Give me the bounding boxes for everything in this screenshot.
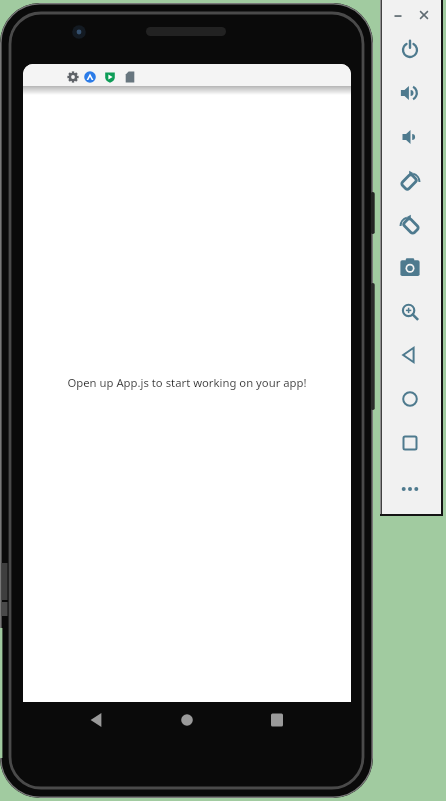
button[interactable]	[175, 708, 199, 732]
button[interactable]	[265, 708, 289, 732]
button[interactable]	[398, 431, 422, 455]
button[interactable]	[398, 477, 422, 501]
button[interactable]	[389, 7, 407, 25]
button[interactable]	[398, 213, 422, 237]
button[interactable]	[398, 343, 422, 367]
button[interactable]	[398, 37, 422, 61]
staticText: Open up App.js to start working on your …	[67, 375, 307, 390]
button[interactable]	[121, 68, 139, 86]
button[interactable]	[398, 125, 422, 149]
button[interactable]	[398, 387, 422, 411]
button[interactable]	[415, 6, 433, 24]
button[interactable]	[398, 300, 422, 324]
button[interactable]	[398, 257, 422, 281]
button[interactable]	[101, 68, 119, 86]
button[interactable]	[398, 81, 422, 105]
button[interactable]	[64, 68, 82, 86]
button[interactable]	[81, 68, 99, 86]
button[interactable]	[398, 169, 422, 193]
button[interactable]	[84, 708, 108, 732]
